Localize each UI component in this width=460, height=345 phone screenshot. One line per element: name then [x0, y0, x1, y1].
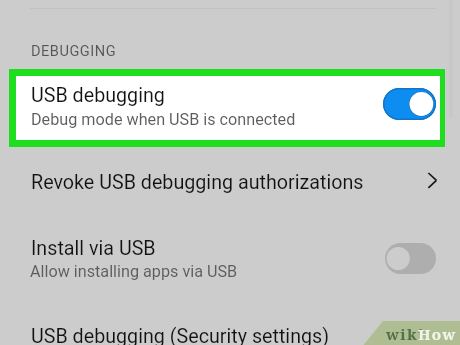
button[interactable]: [0, 316, 460, 345]
staticText: DEBUGGING: [31, 42, 117, 59]
staticText: USB debugging (Security settings): [31, 325, 330, 345]
staticText: How: [418, 324, 457, 345]
staticText: wiki: [386, 324, 425, 345]
staticText: Revoke USB debugging authorizations: [31, 171, 364, 194]
staticText: Allow installing apps via USB: [30, 262, 238, 281]
staticText: Install via USB: [31, 237, 156, 260]
staticText: Debug mode when USB is connected: [31, 110, 296, 129]
button[interactable]: [0, 228, 460, 290]
button[interactable]: [0, 159, 460, 215]
button[interactable]: USB debugging, on: [383, 88, 436, 120]
button[interactable]: [9, 69, 445, 147]
staticText: USB debugging: [31, 84, 165, 107]
other: Open: [420, 165, 444, 195]
button[interactable]: Install via USB, off: [385, 243, 436, 274]
